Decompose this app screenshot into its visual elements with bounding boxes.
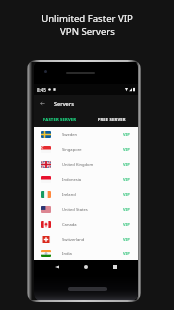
staticText: Sweden (62, 132, 78, 138)
button[interactable]: FREE SERVER (86, 112, 138, 127)
button[interactable]: Recent apps (109, 261, 121, 273)
staticText: Switzerland (62, 237, 85, 243)
staticText: Ireland (62, 192, 76, 198)
staticText: VIP (123, 132, 130, 137)
button[interactable]: Back (51, 261, 63, 273)
staticText: FREE SERVER (98, 117, 126, 123)
button[interactable]: FASTER SERVER (34, 112, 86, 127)
button[interactable]: Singapore (34, 142, 138, 157)
button[interactable]: Canada (34, 217, 138, 232)
button[interactable]: Switzerland (34, 232, 138, 247)
staticText: VIP (123, 207, 130, 212)
button[interactable]: Indonesia (34, 172, 138, 187)
staticText: United States (62, 207, 88, 213)
button[interactable]: United Kingdom (34, 157, 138, 172)
staticText: United Kingdom (62, 162, 94, 168)
staticText: VIP (123, 177, 130, 182)
button[interactable]: Home (80, 261, 92, 273)
staticText: VIP (123, 237, 130, 242)
staticText: Singapore (62, 147, 82, 153)
staticText: VIP (123, 162, 130, 167)
staticText: FASTER SERVER (43, 117, 77, 123)
staticText: VIP (123, 192, 130, 197)
staticText: 8:45 (37, 87, 46, 93)
staticText: Canada (62, 222, 77, 228)
staticText: India (62, 251, 72, 257)
button[interactable]: Sweden (34, 127, 138, 142)
button[interactable]: United States (34, 202, 138, 217)
button[interactable]: Back (38, 99, 47, 108)
staticText: VIP (123, 147, 130, 152)
staticText: Indonesia (62, 177, 82, 183)
staticText: VPN Servers (60, 25, 115, 38)
staticText: Servers (54, 100, 74, 108)
staticText: VIP (123, 222, 130, 227)
button[interactable]: Ireland (34, 187, 138, 202)
button[interactable]: India (34, 247, 138, 260)
staticText: Unlimited Faster VIP (41, 12, 133, 25)
staticText: VIP (123, 251, 130, 256)
